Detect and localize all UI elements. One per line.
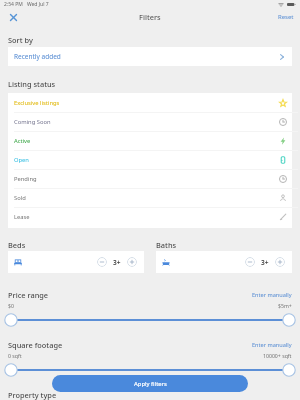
button[interactable]: Open bbox=[8, 150, 292, 169]
button[interactable]: Increase bbox=[127, 257, 137, 267]
staticText: Baths bbox=[156, 240, 177, 250]
button[interactable]: Pending bbox=[8, 169, 292, 188]
staticText: $5m+ bbox=[278, 302, 292, 309]
staticText: 3+ bbox=[261, 258, 269, 267]
button[interactable]: Decrease bbox=[245, 257, 255, 267]
button[interactable]: Close bbox=[6, 10, 20, 24]
staticText: Recently added bbox=[14, 52, 61, 61]
button[interactable]: Enter manually bbox=[252, 291, 292, 299]
staticText: Listing status bbox=[8, 79, 56, 89]
staticText: 2:54 PM bbox=[4, 1, 23, 8]
button[interactable]: Coming Soon bbox=[8, 112, 292, 131]
button[interactable]: Increase bbox=[275, 257, 285, 267]
button[interactable]: Reset bbox=[278, 13, 294, 21]
staticText: Exclusive listings bbox=[14, 99, 60, 107]
staticText: Reset bbox=[278, 13, 294, 21]
staticText: Apply filters bbox=[134, 380, 167, 388]
staticText: 0 sqft bbox=[8, 352, 22, 359]
staticText: Sold bbox=[14, 194, 26, 202]
staticText: Enter manually bbox=[252, 291, 292, 299]
staticText: Beds bbox=[8, 240, 26, 250]
staticText: Property type bbox=[8, 390, 57, 400]
staticText: Square footage bbox=[8, 340, 63, 350]
staticText: $0 bbox=[8, 302, 14, 309]
button[interactable]: Decrease bbox=[97, 257, 107, 267]
staticText: 10000+ sqft bbox=[263, 352, 292, 359]
button[interactable]: Sold bbox=[8, 188, 292, 207]
button[interactable]: Enter manually bbox=[252, 341, 292, 349]
staticText: Wed Jul 7 bbox=[27, 1, 49, 8]
staticText: Sort by bbox=[8, 35, 33, 45]
staticText: Coming Soon bbox=[14, 118, 51, 126]
staticText: Pending bbox=[14, 175, 37, 183]
button[interactable]: Active bbox=[8, 131, 292, 150]
staticText: Enter manually bbox=[252, 341, 292, 349]
staticText: Open bbox=[14, 156, 29, 164]
staticText: Active bbox=[14, 137, 31, 145]
staticText: Filters bbox=[139, 12, 161, 22]
staticText: Price range bbox=[8, 290, 49, 300]
button[interactable]: Lease bbox=[8, 207, 292, 226]
staticText: 3+ bbox=[113, 258, 121, 267]
button[interactable]: Apply filters bbox=[52, 375, 248, 392]
button[interactable]: Recently added bbox=[8, 47, 292, 66]
button[interactable]: Exclusive listings bbox=[8, 93, 292, 112]
staticText: Lease bbox=[14, 213, 30, 221]
